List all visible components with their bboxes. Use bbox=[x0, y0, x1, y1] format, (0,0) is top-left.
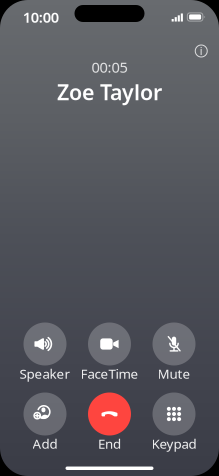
staticText: Keypad bbox=[151, 435, 196, 452]
staticText: 10:00 bbox=[23, 7, 59, 27]
staticText: 00:05 bbox=[91, 57, 127, 77]
button[interactable]: FaceTime bbox=[77, 322, 142, 380]
staticText: Speaker bbox=[19, 365, 70, 382]
staticText: FaceTime bbox=[80, 365, 138, 382]
button[interactable]: Add bbox=[13, 392, 77, 450]
staticText: End bbox=[98, 435, 121, 452]
button[interactable]: Keypad bbox=[142, 392, 206, 450]
button[interactable]: Speaker bbox=[13, 322, 77, 380]
staticText: Add bbox=[32, 435, 57, 452]
button[interactable]: Mute bbox=[142, 322, 206, 380]
staticText: Zoe Taylor bbox=[57, 78, 162, 106]
button[interactable]: End bbox=[77, 392, 142, 450]
staticText: i bbox=[200, 44, 203, 58]
button[interactable]: Call info bbox=[188, 38, 214, 64]
staticText: Mute bbox=[157, 365, 190, 382]
